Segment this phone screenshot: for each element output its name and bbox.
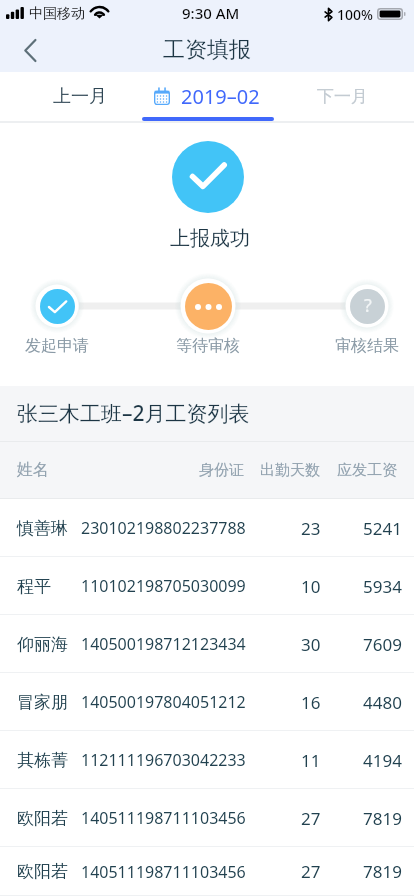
button[interactable]: Back xyxy=(10,30,50,70)
staticText: 140500197804051212 xyxy=(81,691,246,713)
button[interactable]: 慎善琳 xyxy=(0,499,414,557)
staticText: 仰丽海 xyxy=(17,634,68,655)
staticText: 30 xyxy=(301,633,321,656)
staticText: 2019–02 xyxy=(181,83,260,110)
staticText: 27 xyxy=(301,807,321,830)
staticText: 应发工资 xyxy=(337,461,397,480)
staticText: 140511198711103456 xyxy=(81,807,246,829)
staticText: 4194 xyxy=(363,749,402,772)
staticText: 9:30 AM xyxy=(182,3,240,23)
staticText: 10 xyxy=(301,575,321,598)
button[interactable]: Step xyxy=(344,283,390,329)
staticText: 慎善琳 xyxy=(17,518,68,539)
staticText: 欧阳若 xyxy=(17,861,68,882)
staticText: 7819 xyxy=(363,807,402,830)
staticText: 7819 xyxy=(363,860,402,883)
button[interactable]: 冒家朋 xyxy=(0,673,414,731)
staticText: 中国移动 xyxy=(29,5,85,23)
staticText: 4480 xyxy=(363,691,402,714)
staticText: 出勤天数 xyxy=(260,461,320,480)
button[interactable]: 上一月 xyxy=(11,72,149,121)
button[interactable]: 程平 xyxy=(0,557,414,615)
button[interactable]: 下一月 xyxy=(273,72,411,121)
staticText: 11 xyxy=(301,749,321,772)
staticText: 冒家朋 xyxy=(17,692,68,713)
button[interactable]: 欧阳若 xyxy=(0,847,414,896)
staticText: 上一月 xyxy=(53,85,107,108)
staticText: 张三木工班–2月工资列表 xyxy=(17,399,250,428)
staticText: 5241 xyxy=(363,517,402,540)
staticText: 身份证 xyxy=(199,461,244,480)
staticText: 姓名 xyxy=(17,460,49,480)
staticText: 欧阳若 xyxy=(17,808,68,829)
staticText: 其栋菁 xyxy=(17,750,68,771)
staticText: 工资填报 xyxy=(163,36,251,64)
staticText: 上报成功 xyxy=(170,226,250,251)
button[interactable]: 其栋菁 xyxy=(0,731,414,789)
staticText: 140500198712123434 xyxy=(81,633,246,655)
staticText: 7609 xyxy=(363,633,402,656)
staticText: 16 xyxy=(301,691,321,714)
staticText: 23 xyxy=(301,517,321,540)
staticText: 等待审核 xyxy=(176,336,240,356)
button[interactable]: 仰丽海 xyxy=(0,615,414,673)
staticText: ? xyxy=(364,293,372,318)
staticText: 27 xyxy=(301,860,321,883)
staticText: 发起申请 xyxy=(25,336,89,356)
staticText: 审核结果 xyxy=(335,336,399,356)
button[interactable]: 2019–02 xyxy=(138,72,276,121)
staticText: 140511198711103456 xyxy=(81,861,246,883)
button[interactable]: Step xyxy=(34,283,80,329)
button[interactable]: 欧阳若 xyxy=(0,789,414,847)
staticText: 下一月 xyxy=(317,86,368,107)
staticText: 112111196703042233 xyxy=(81,749,246,771)
staticText: 110102198705030099 xyxy=(81,575,246,597)
staticText: 230102198802237788 xyxy=(81,517,246,539)
button[interactable]: Step xyxy=(179,277,237,335)
staticText: 程平 xyxy=(17,576,51,597)
staticText: 5934 xyxy=(363,575,402,598)
staticText: 100% xyxy=(337,5,373,24)
